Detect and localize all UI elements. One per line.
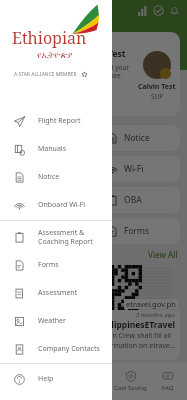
staticText: FAQ [162,384,174,392]
staticText: 3 months ago [136,311,175,319]
staticText: Check your notice, bulletins, find your … [14,63,140,88]
staticText: የኢትዮጵያ [37,51,73,60]
staticText: Wi-Fi [35,163,55,175]
staticText: Forms [38,260,59,270]
staticText: OBA [35,194,53,206]
staticText: Home [13,384,31,392]
staticText: Notice [38,172,60,182]
button[interactable]: Notice [0,163,112,191]
button[interactable]: OBA [8,187,89,213]
button[interactable]: Home [11,367,33,395]
button[interactable]: Wi-Fi [97,156,180,182]
button[interactable]: Help [0,365,112,393]
staticText: Flight Report [38,116,81,126]
staticText: etravel.gov.ph [126,299,176,309]
staticText: Assessment & Coaching Report [38,228,93,246]
staticText: Forms [35,225,61,237]
button[interactable]: Wi-Fi [8,156,89,182]
button[interactable]: Notice [97,125,180,151]
staticText: Manuals [38,144,67,154]
staticText: Help [38,374,54,384]
staticText: Welcome Back, Calvin Test [14,48,126,60]
staticText: Cost Saving [114,384,147,392]
staticText: PhilippinesETravel [98,319,175,331]
staticText: Wi-Fi [124,163,144,175]
staticText: Company Contacts [38,344,100,354]
staticText: Forms [124,225,150,237]
staticText: A STAR ALLIANCE MEMBER [14,71,77,78]
button[interactable]: Cost Saving [112,367,149,395]
button[interactable]: Manuals [0,135,112,163]
button[interactable]: Assessment [0,279,112,307]
button[interactable]: Flight Report [0,107,112,135]
staticText: Notice [124,132,150,144]
button[interactable]: OBA [97,187,180,213]
button[interactable]: Forms [97,218,180,244]
button[interactable]: Assessment & Coaching Report [0,223,112,251]
button[interactable]: Company Contacts [0,335,112,363]
button[interactable]: Forms [8,218,89,244]
staticText: OBA [124,194,142,206]
button[interactable]: Notice [8,125,89,151]
button[interactable]: Forms [0,251,112,279]
button[interactable]: etravel.gov.ph [5,264,180,360]
button[interactable]: FAQ [160,367,176,395]
button[interactable]: Weather [0,307,112,335]
staticText: Cabin Crew shall fill all information on… [98,331,176,351]
button[interactable]: Onboard Wi-Fi [0,191,112,219]
staticText: Ethiopian [12,27,87,49]
button[interactable]: Roster [44,367,67,395]
button[interactable]: View All [148,249,178,260]
staticText: Weather [38,316,66,326]
staticText: Assessment [38,288,78,298]
staticText: SUP [151,92,164,101]
staticText: Onboard Wi-Fi [38,200,86,210]
staticText: Calvin Test [138,82,176,92]
